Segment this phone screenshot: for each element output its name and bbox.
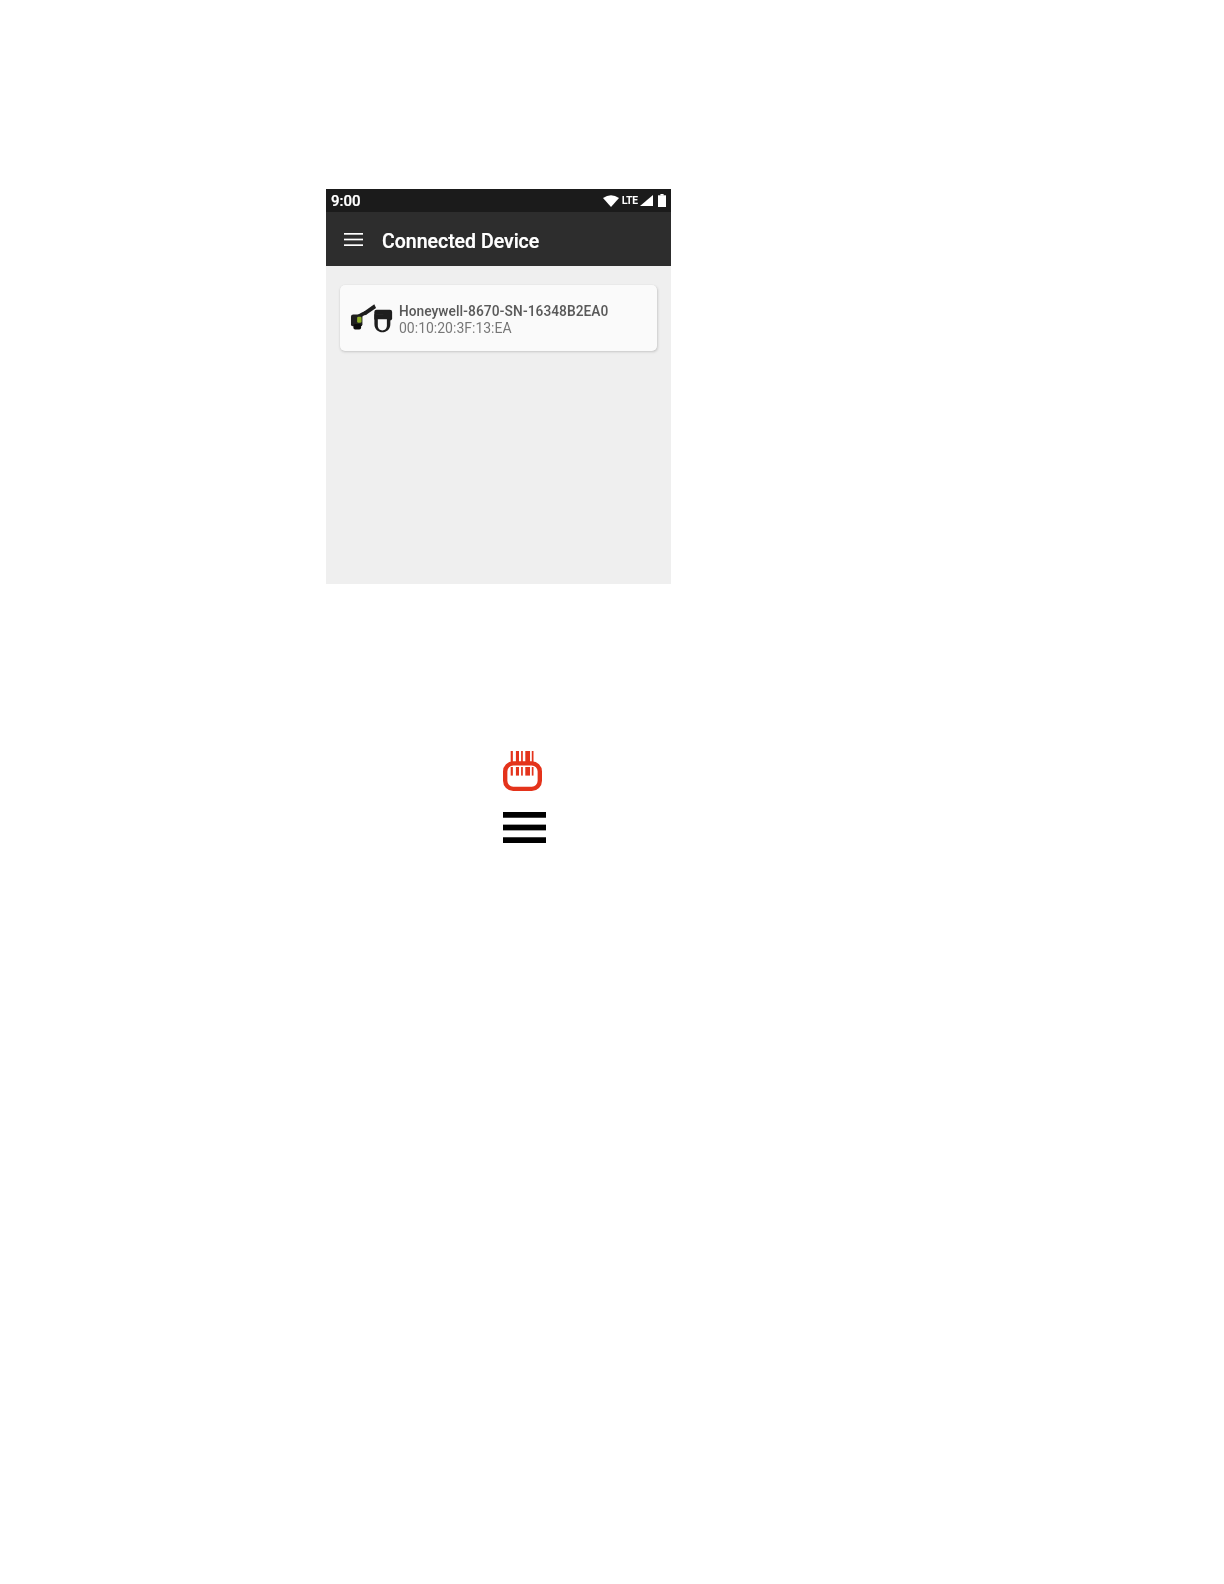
staticText: LTE	[622, 195, 638, 207]
button[interactable]: Scan barcode	[503, 751, 542, 791]
button[interactable]: Honeywell-8670-SN-16348B2EA0	[340, 285, 657, 351]
staticText: Connected Device	[382, 230, 540, 253]
staticText: 9:00	[331, 192, 361, 210]
button[interactable]: Open menu	[503, 812, 546, 843]
staticText: Honeywell-8670-SN-16348B2EA0	[399, 303, 609, 319]
staticText: 00:10:20:3F:13:EA	[399, 320, 512, 336]
button[interactable]: Open navigation menu	[338, 224, 368, 254]
